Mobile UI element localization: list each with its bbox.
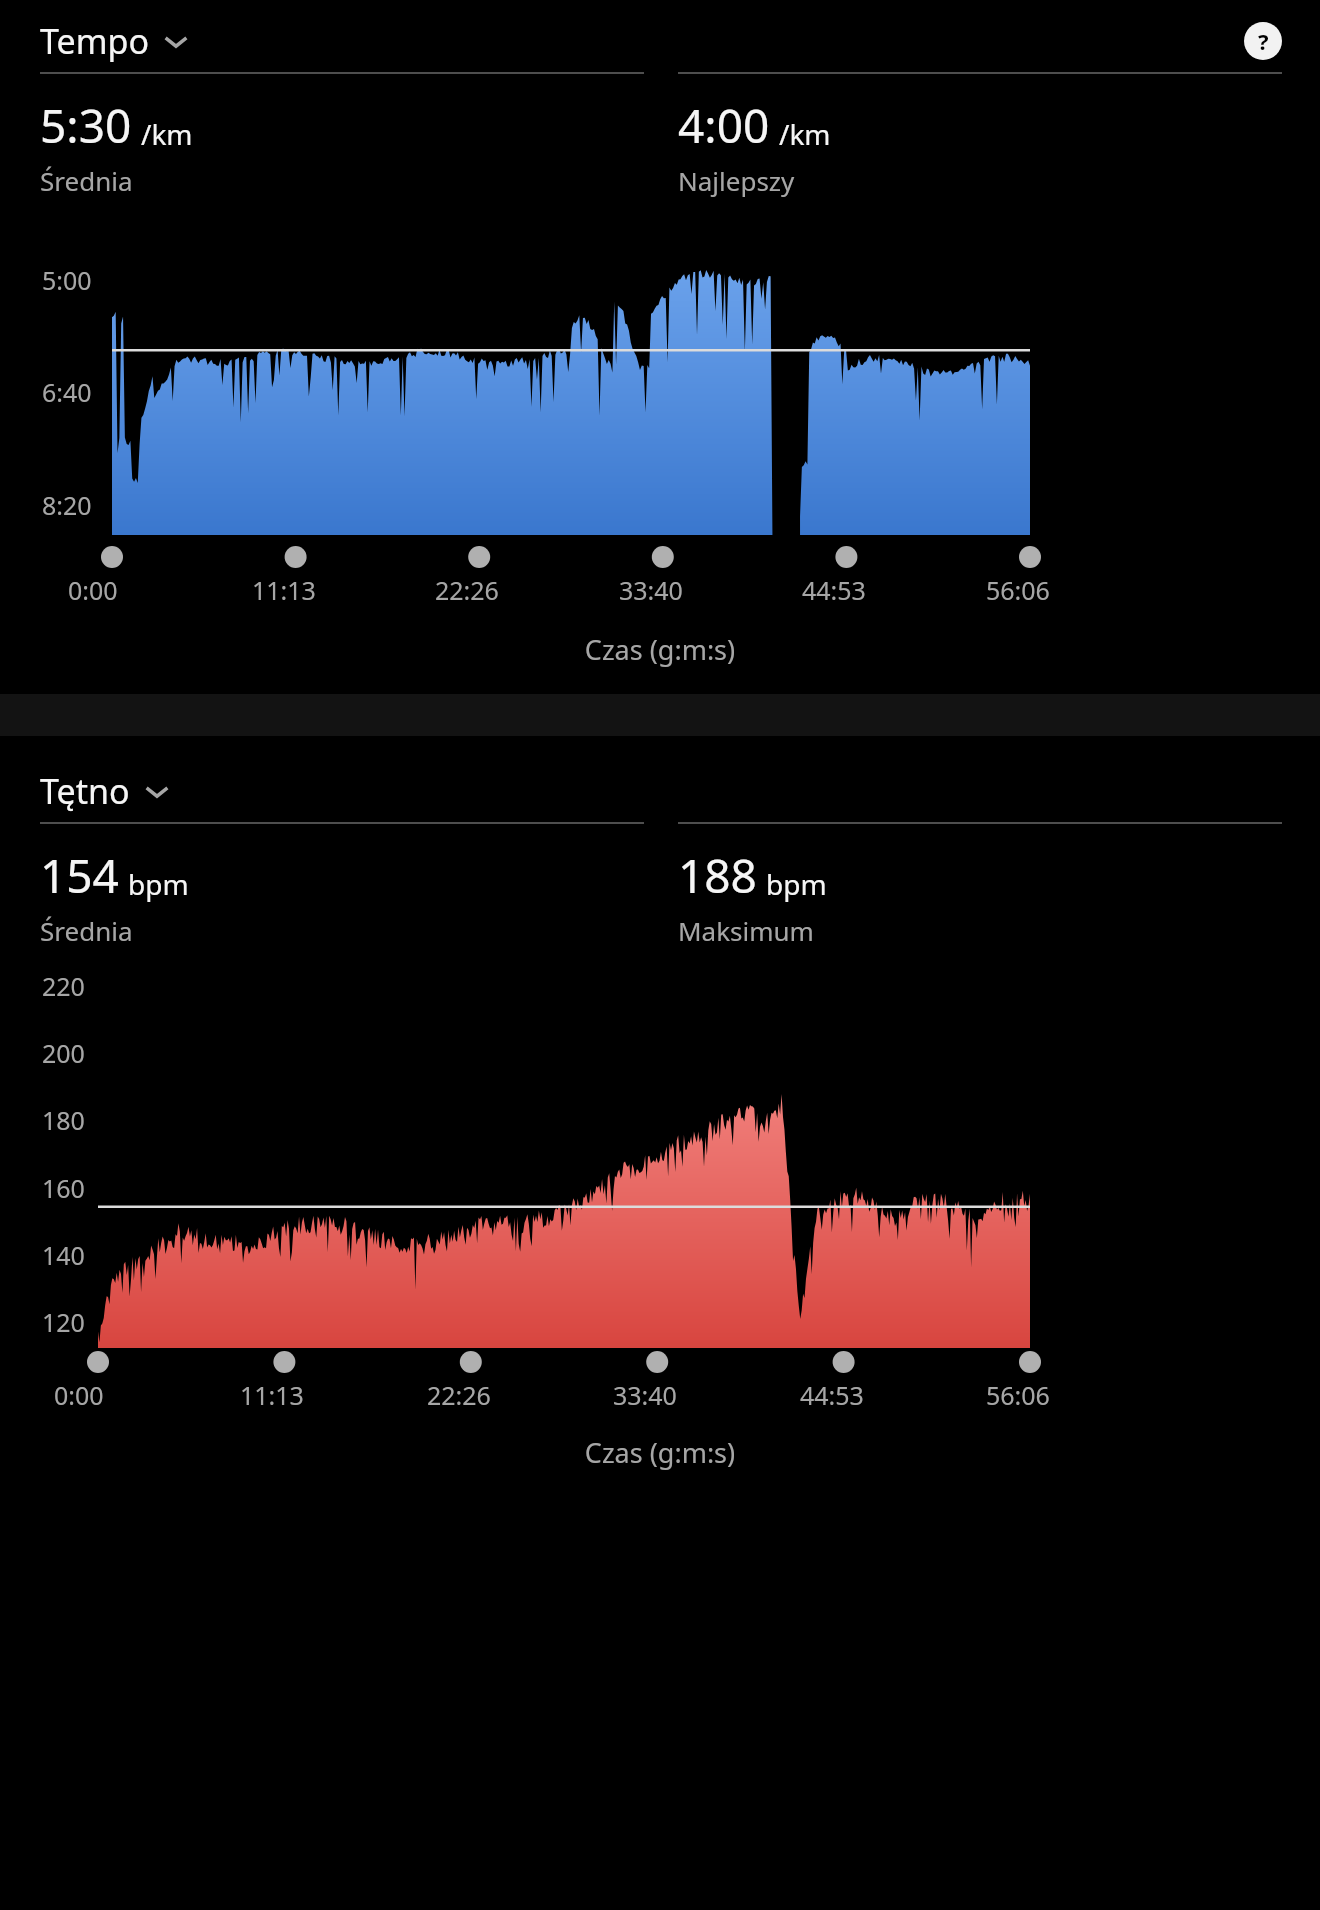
staticText: Tętno — [40, 768, 130, 814]
staticText: 6:40 — [42, 375, 92, 409]
staticText: Czas (g:m:s) — [0, 631, 1320, 668]
button[interactable]: 5:30 — [40, 72, 644, 198]
staticText: 22:26 — [435, 573, 499, 607]
staticText: 4:00 — [678, 94, 770, 157]
staticText: 22:26 — [427, 1378, 491, 1412]
staticText: 200 — [42, 1036, 85, 1070]
staticText: /km — [779, 115, 831, 153]
staticText: 56:06 — [986, 1378, 1050, 1412]
staticText: 160 — [42, 1171, 85, 1205]
staticText: Tempo — [40, 18, 149, 64]
staticText: 120 — [42, 1305, 85, 1339]
button[interactable]: 154 — [40, 822, 644, 948]
staticText: bpm — [766, 865, 827, 903]
staticText: 11:13 — [252, 573, 316, 607]
staticText: 5:00 — [42, 263, 92, 297]
staticText: Czas (g:m:s) — [0, 1434, 1320, 1471]
staticText: 0:00 — [54, 1378, 104, 1412]
staticText: 44:53 — [802, 573, 866, 607]
staticText: 11:13 — [240, 1378, 304, 1412]
staticText: 56:06 — [986, 573, 1050, 607]
staticText: 188 — [678, 844, 757, 907]
staticText: 44:53 — [800, 1378, 864, 1412]
staticText: 5:30 — [40, 94, 132, 157]
staticText: bpm — [128, 865, 189, 903]
staticText: Maksimum — [678, 913, 814, 948]
button[interactable]: 188 — [678, 822, 1282, 948]
staticText: Najlepszy — [678, 163, 795, 198]
staticText: 33:40 — [613, 1378, 677, 1412]
staticText: Średnia — [40, 163, 133, 198]
button[interactable]: Tempo — [40, 18, 189, 64]
staticText: 180 — [42, 1103, 85, 1137]
button[interactable]: Tętno — [40, 768, 170, 814]
staticText: Średnia — [40, 913, 133, 948]
staticText: 0:00 — [68, 573, 118, 607]
staticText: /km — [141, 115, 193, 153]
staticText: 8:20 — [42, 488, 92, 522]
staticText: 220 — [42, 969, 85, 1003]
button[interactable]: Help — [1244, 22, 1282, 60]
staticText: 33:40 — [619, 573, 683, 607]
button[interactable]: 4:00 — [678, 72, 1282, 198]
staticText: ? — [1258, 26, 1269, 56]
staticText: 140 — [42, 1238, 85, 1272]
staticText: 154 — [40, 844, 119, 907]
